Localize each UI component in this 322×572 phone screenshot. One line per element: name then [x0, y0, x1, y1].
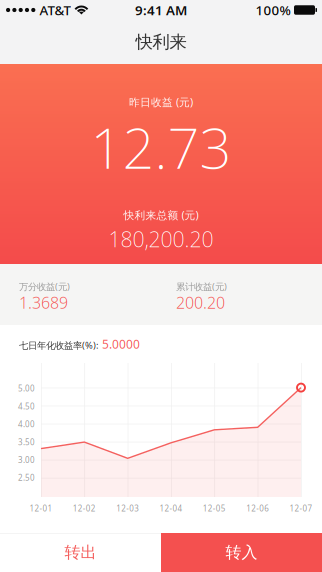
staticText: 5.00: [18, 383, 35, 394]
staticText: 12.73: [90, 110, 231, 184]
staticText: 4.50: [18, 401, 35, 412]
staticText: 转入: [225, 543, 257, 562]
staticText: 快利来总额 (元): [123, 208, 198, 222]
staticText: 12-02: [73, 503, 96, 514]
staticText: 12-07: [289, 503, 312, 514]
staticText: 累计收益(元): [176, 280, 227, 293]
staticText: 12-01: [29, 503, 52, 514]
staticText: 2.50: [18, 472, 35, 483]
staticText: 昨日收益 (元): [129, 95, 193, 109]
staticText: 3.50: [18, 437, 35, 447]
staticText: AT&T: [39, 1, 70, 19]
staticText: 转出: [64, 543, 96, 562]
staticText: 100%: [255, 1, 290, 19]
staticText: 3.00: [18, 455, 35, 465]
staticText: 4.00: [18, 419, 35, 429]
staticText: 12-06: [246, 503, 269, 514]
staticText: 5.0000: [102, 336, 140, 352]
button[interactable]: 转出: [0, 533, 161, 572]
staticText: 七日年化收益率(%):: [19, 339, 99, 351]
staticText: 12-04: [159, 503, 182, 514]
staticText: 万分收益(元): [19, 280, 70, 293]
staticText: 200.20: [176, 292, 225, 313]
staticText: 快利来: [135, 31, 186, 53]
staticText: 9:41 AM: [135, 1, 187, 19]
staticText: 1.3689: [19, 292, 68, 313]
staticText: 12-03: [116, 503, 139, 514]
button[interactable]: 转入: [161, 533, 322, 572]
staticText: 12-05: [203, 503, 226, 514]
staticText: 180,200.20: [108, 225, 213, 253]
